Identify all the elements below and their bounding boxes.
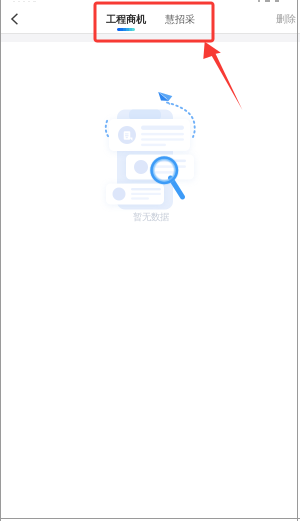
button[interactable]: Back	[2, 6, 28, 32]
button[interactable]: 工程商机	[104, 9, 152, 37]
staticText: 删除	[276, 13, 296, 25]
staticText: 暂无数据	[133, 211, 169, 223]
staticText: 工程商机	[106, 13, 146, 26]
staticText: 慧招采	[165, 13, 195, 26]
button[interactable]: 删除	[270, 8, 300, 30]
button[interactable]: 慧招采	[162, 9, 200, 37]
